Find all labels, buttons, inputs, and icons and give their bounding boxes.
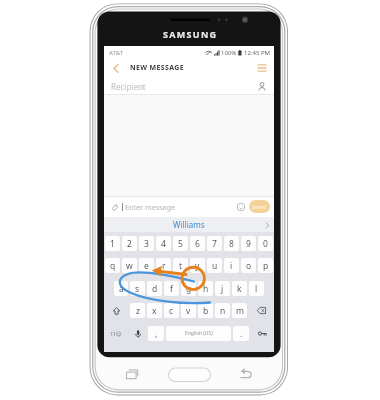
staticText: Send — [252, 203, 267, 211]
button[interactable]: 7 — [207, 236, 222, 251]
staticText: 5 — [178, 238, 183, 250]
button[interactable]: v — [181, 303, 196, 318]
button[interactable]: , — [148, 326, 164, 341]
staticText: b — [203, 305, 209, 317]
button[interactable]: n — [215, 303, 230, 318]
button[interactable]: More options — [249, 59, 274, 77]
staticText: i — [230, 260, 233, 272]
staticText: 12:45 PM — [244, 49, 270, 57]
staticText: k — [237, 283, 242, 295]
staticText: l — [255, 283, 258, 295]
button[interactable]: k — [232, 281, 247, 296]
staticText: Recipient — [111, 81, 146, 92]
staticText: !1☺ — [111, 330, 122, 337]
button[interactable]: 9 — [241, 236, 256, 251]
button[interactable]: h — [198, 281, 213, 296]
button[interactable]: a — [114, 281, 128, 296]
button[interactable]: m — [232, 303, 247, 318]
staticText: s — [135, 283, 140, 295]
staticText: e — [144, 260, 149, 272]
staticText: 7 — [212, 238, 217, 250]
staticText: h — [203, 283, 209, 295]
staticText: 6 — [195, 238, 200, 250]
staticText: 100% — [221, 49, 237, 57]
staticText: a — [119, 283, 124, 295]
button[interactable]: 3 — [139, 236, 154, 251]
button[interactable]: Back — [104, 59, 127, 77]
button[interactable]: r — [156, 258, 171, 273]
button[interactable]: q — [105, 258, 120, 273]
button[interactable]: t — [173, 258, 188, 273]
button[interactable]: y — [190, 258, 205, 273]
staticText: g — [186, 283, 192, 295]
staticText: p — [263, 260, 269, 272]
button[interactable]: 6 — [190, 236, 205, 251]
staticText: English (US) — [185, 330, 213, 337]
staticText: w — [126, 260, 133, 272]
button[interactable]: w — [122, 258, 137, 273]
button[interactable]: j — [215, 281, 230, 296]
button[interactable]: Add contact — [255, 79, 269, 93]
staticText: 0 — [263, 238, 268, 250]
staticText: Enter message — [125, 202, 176, 212]
button[interactable]: o — [241, 258, 256, 273]
button[interactable]: Emoji — [235, 201, 247, 213]
staticText: n — [220, 305, 226, 317]
staticText: AT&T — [109, 49, 123, 57]
staticText: 8 — [229, 238, 234, 250]
staticText: f — [170, 283, 173, 295]
staticText: 9 — [246, 238, 251, 250]
button[interactable]: . — [233, 326, 249, 341]
button[interactable]: 5 — [173, 236, 188, 251]
button[interactable]: 2 — [122, 236, 137, 251]
button[interactable]: 0 — [258, 236, 273, 251]
button[interactable]: Symbols — [104, 326, 129, 341]
button[interactable]: Keyboard settings — [250, 326, 274, 341]
staticText: d — [152, 283, 158, 295]
staticText: o — [246, 260, 252, 272]
button[interactable]: 8 — [224, 236, 239, 251]
button[interactable]: Shift — [105, 303, 128, 318]
button[interactable]: b — [198, 303, 213, 318]
button[interactable]: 4 — [156, 236, 171, 251]
button[interactable]: English (US) — [166, 326, 231, 341]
button[interactable]: Backspace — [249, 303, 273, 318]
button[interactable]: g — [181, 281, 196, 296]
staticText: NEW MESSAGE — [130, 63, 184, 73]
staticText: j — [221, 283, 224, 295]
staticText: q — [110, 260, 116, 272]
button[interactable]: f — [164, 281, 179, 296]
staticText: 3 — [144, 238, 149, 250]
staticText: 4 — [161, 238, 166, 250]
staticText: v — [186, 305, 191, 317]
staticText: u — [212, 260, 218, 272]
staticText: 2 — [127, 238, 132, 250]
button[interactable]: p — [258, 258, 273, 273]
button[interactable]: i — [224, 258, 239, 273]
button[interactable]: z — [130, 303, 145, 318]
staticText: x — [152, 305, 157, 317]
button[interactable]: d — [147, 281, 162, 296]
staticText: Williams — [173, 219, 205, 230]
staticText: m — [236, 305, 244, 317]
staticText: t — [179, 260, 183, 272]
staticText: SAMSUNG — [163, 28, 218, 40]
staticText: r — [162, 260, 166, 272]
staticText: 1 — [110, 238, 115, 250]
staticText: . — [240, 328, 243, 340]
button[interactable]: Attach — [108, 200, 121, 213]
button[interactable]: e — [139, 258, 154, 273]
button[interactable]: Voice input — [129, 326, 147, 341]
button[interactable]: x — [147, 303, 162, 318]
button[interactable]: 1 — [105, 236, 120, 251]
button[interactable]: c — [164, 303, 179, 318]
button[interactable]: Send — [249, 200, 270, 213]
button[interactable]: u — [207, 258, 222, 273]
staticText: , — [155, 328, 158, 340]
staticText: c — [169, 305, 174, 317]
button[interactable]: l — [249, 281, 264, 296]
staticText: z — [136, 305, 140, 317]
staticText: y — [195, 260, 200, 272]
button[interactable]: s — [130, 281, 145, 296]
